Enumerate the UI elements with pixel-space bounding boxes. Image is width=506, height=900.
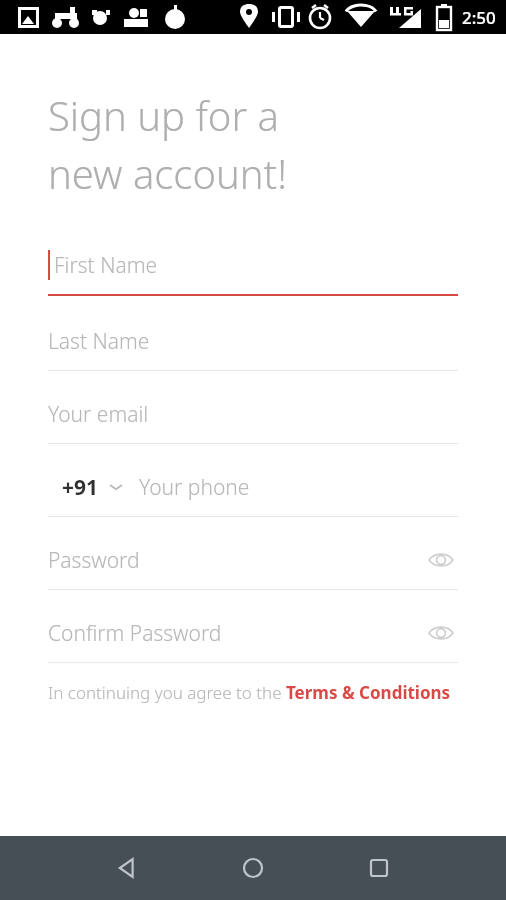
- button[interactable]: First Name: [48, 244, 458, 296]
- staticText: First Name: [54, 251, 158, 280]
- button[interactable]: Last Name: [48, 320, 458, 371]
- staticText: Sign up for a new account!: [48, 88, 288, 200]
- staticText: Password: [48, 546, 140, 575]
- staticText: Your email: [48, 400, 149, 429]
- staticText: In continuing you agree to the Terms & C…: [48, 681, 451, 704]
- button[interactable]: Show password: [424, 616, 458, 650]
- staticText: +91: [62, 473, 99, 502]
- staticText: 2:50: [462, 6, 496, 29]
- button[interactable]: Show password: [424, 543, 458, 577]
- button[interactable]: Recent apps: [353, 842, 405, 894]
- button[interactable]: Your email: [48, 393, 458, 444]
- staticText: Your phone: [139, 473, 250, 502]
- staticText: Last Name: [48, 327, 150, 356]
- button[interactable]: Password: [48, 539, 458, 590]
- button[interactable]: In continuing you agree to the Terms & C…: [48, 681, 458, 704]
- button[interactable]: Back: [101, 842, 153, 894]
- button[interactable]: +91: [48, 466, 458, 517]
- staticText: Confirm Password: [48, 619, 222, 648]
- button[interactable]: Confirm Password: [48, 612, 458, 663]
- button[interactable]: Home: [227, 842, 279, 894]
